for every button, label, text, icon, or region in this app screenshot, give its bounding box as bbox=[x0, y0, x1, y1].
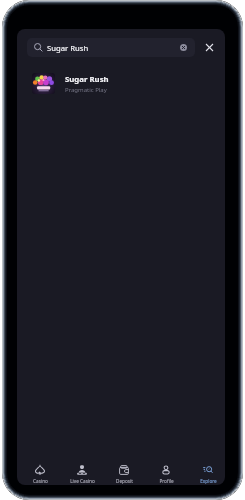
staticText: Deposit bbox=[116, 478, 133, 484]
button[interactable]: Sugar Rush bbox=[27, 38, 195, 57]
button[interactable]: Sugar Rush bbox=[17, 68, 225, 99]
button[interactable]: Explore bbox=[187, 456, 225, 485]
staticText: Casino bbox=[33, 478, 48, 484]
button[interactable]: Casino bbox=[19, 456, 61, 485]
staticText: Sugar Rush bbox=[47, 43, 89, 53]
button[interactable]: Deposit bbox=[103, 456, 145, 485]
staticText: Profile bbox=[159, 478, 174, 484]
button[interactable]: Clear search bbox=[177, 41, 190, 54]
button[interactable]: Profile bbox=[145, 456, 187, 485]
staticText: Live Casino bbox=[70, 478, 95, 484]
staticText: Pragmatic Play bbox=[65, 86, 107, 94]
button[interactable]: Close bbox=[200, 38, 219, 57]
button[interactable]: Live Casino bbox=[61, 456, 103, 485]
staticText: Explore bbox=[200, 478, 217, 484]
staticText: Sugar Rush bbox=[65, 74, 109, 85]
